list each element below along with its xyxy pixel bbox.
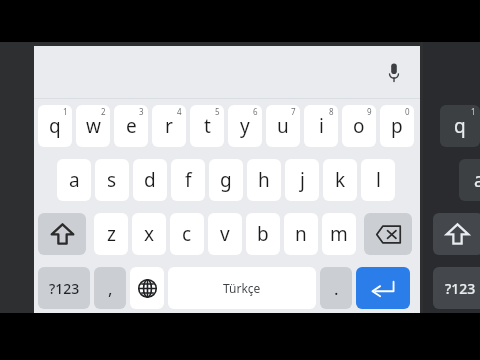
button[interactable]: . bbox=[320, 267, 352, 309]
button[interactable]: o bbox=[342, 105, 376, 147]
button[interactable]: Shift bbox=[433, 213, 480, 255]
button[interactable]: q bbox=[440, 105, 480, 147]
staticText: y bbox=[240, 113, 250, 139]
button[interactable]: j bbox=[285, 159, 319, 201]
button[interactable]: r bbox=[152, 105, 186, 147]
button[interactable]: m bbox=[322, 213, 356, 255]
staticText: c bbox=[182, 221, 192, 247]
button[interactable]: ?123 bbox=[433, 267, 480, 309]
staticText: g bbox=[220, 167, 232, 193]
button[interactable]: Shift bbox=[38, 213, 86, 255]
staticText: a bbox=[474, 167, 480, 193]
staticText: s bbox=[107, 167, 117, 193]
staticText: v bbox=[220, 221, 230, 247]
staticText: q bbox=[454, 113, 466, 139]
staticText: m bbox=[330, 221, 348, 247]
button[interactable]: b bbox=[246, 213, 280, 255]
staticText: p bbox=[391, 113, 403, 139]
button[interactable]: l bbox=[361, 159, 395, 201]
button[interactable]: d bbox=[133, 159, 167, 201]
staticText: j bbox=[300, 167, 305, 193]
button[interactable]: u bbox=[266, 105, 300, 147]
button[interactable]: q bbox=[38, 105, 72, 147]
staticText: f bbox=[185, 167, 192, 193]
staticText: 1 bbox=[471, 106, 476, 117]
button[interactable]: y bbox=[228, 105, 262, 147]
button[interactable]: ?123 bbox=[38, 267, 90, 309]
staticText: w bbox=[86, 113, 101, 139]
staticText: 7 bbox=[291, 106, 296, 117]
staticText: h bbox=[258, 167, 270, 193]
button[interactable]: a bbox=[57, 159, 91, 201]
staticText: e bbox=[126, 113, 137, 139]
button[interactable]: x bbox=[132, 213, 166, 255]
staticText: a bbox=[69, 167, 80, 193]
button[interactable]: g bbox=[209, 159, 243, 201]
button[interactable]: e bbox=[114, 105, 148, 147]
staticText: b bbox=[257, 221, 269, 247]
staticText: q bbox=[49, 113, 61, 139]
staticText: 6 bbox=[253, 106, 258, 117]
staticText: z bbox=[107, 221, 116, 247]
button[interactable]: h bbox=[247, 159, 281, 201]
staticText: t bbox=[204, 113, 211, 139]
button[interactable]: w bbox=[76, 105, 110, 147]
button[interactable]: Change language bbox=[130, 267, 164, 309]
staticText: 5 bbox=[215, 106, 220, 117]
button[interactable]: Voice input bbox=[378, 56, 410, 88]
button[interactable]: i bbox=[304, 105, 338, 147]
staticText: o bbox=[353, 113, 365, 139]
staticText: i bbox=[319, 113, 324, 139]
button[interactable]: k bbox=[323, 159, 357, 201]
staticText: n bbox=[295, 221, 307, 247]
staticText: 4 bbox=[177, 106, 182, 117]
button[interactable]: Enter bbox=[356, 267, 410, 309]
staticText: 2 bbox=[101, 106, 106, 117]
staticText: l bbox=[376, 167, 381, 193]
staticText: d bbox=[144, 167, 156, 193]
staticText: 9 bbox=[367, 106, 372, 117]
button[interactable]: , bbox=[94, 267, 126, 309]
button[interactable]: f bbox=[171, 159, 205, 201]
button[interactable]: v bbox=[208, 213, 242, 255]
staticText: 1 bbox=[63, 106, 68, 117]
button[interactable]: n bbox=[284, 213, 318, 255]
staticText: Türkçe bbox=[223, 280, 261, 296]
staticText: u bbox=[277, 113, 289, 139]
staticText: x bbox=[144, 221, 155, 247]
button[interactable]: Türkçe bbox=[168, 267, 316, 309]
staticText: 3 bbox=[139, 106, 144, 117]
button[interactable]: a bbox=[459, 159, 480, 201]
button[interactable]: t bbox=[190, 105, 224, 147]
staticText: r bbox=[165, 113, 173, 139]
staticText: 8 bbox=[329, 106, 334, 117]
button[interactable]: Backspace bbox=[364, 213, 412, 255]
button[interactable]: z bbox=[94, 213, 128, 255]
staticText: ?123 bbox=[49, 279, 80, 298]
staticText: . bbox=[334, 277, 339, 300]
staticText: k bbox=[335, 167, 346, 193]
staticText: 0 bbox=[405, 106, 410, 117]
staticText: , bbox=[108, 277, 113, 300]
staticText: ?123 bbox=[445, 279, 476, 298]
button[interactable]: p bbox=[380, 105, 414, 147]
button[interactable]: c bbox=[170, 213, 204, 255]
button[interactable]: s bbox=[95, 159, 129, 201]
